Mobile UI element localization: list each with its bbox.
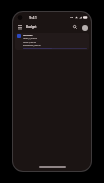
staticText: Groceries <box>23 34 33 37</box>
staticText: LTE <box>70 16 74 19</box>
staticText: Limit: $1,000.00 Spent: $450.00 Remainin… <box>23 37 41 46</box>
button[interactable]: Groceries <box>15 33 89 50</box>
button[interactable]: Menu <box>16 23 24 31</box>
button[interactable]: Search <box>71 23 79 31</box>
button[interactable]: Profile <box>80 23 89 32</box>
staticText: 9:41 <box>29 15 37 20</box>
staticText: Budget <box>26 25 37 29</box>
